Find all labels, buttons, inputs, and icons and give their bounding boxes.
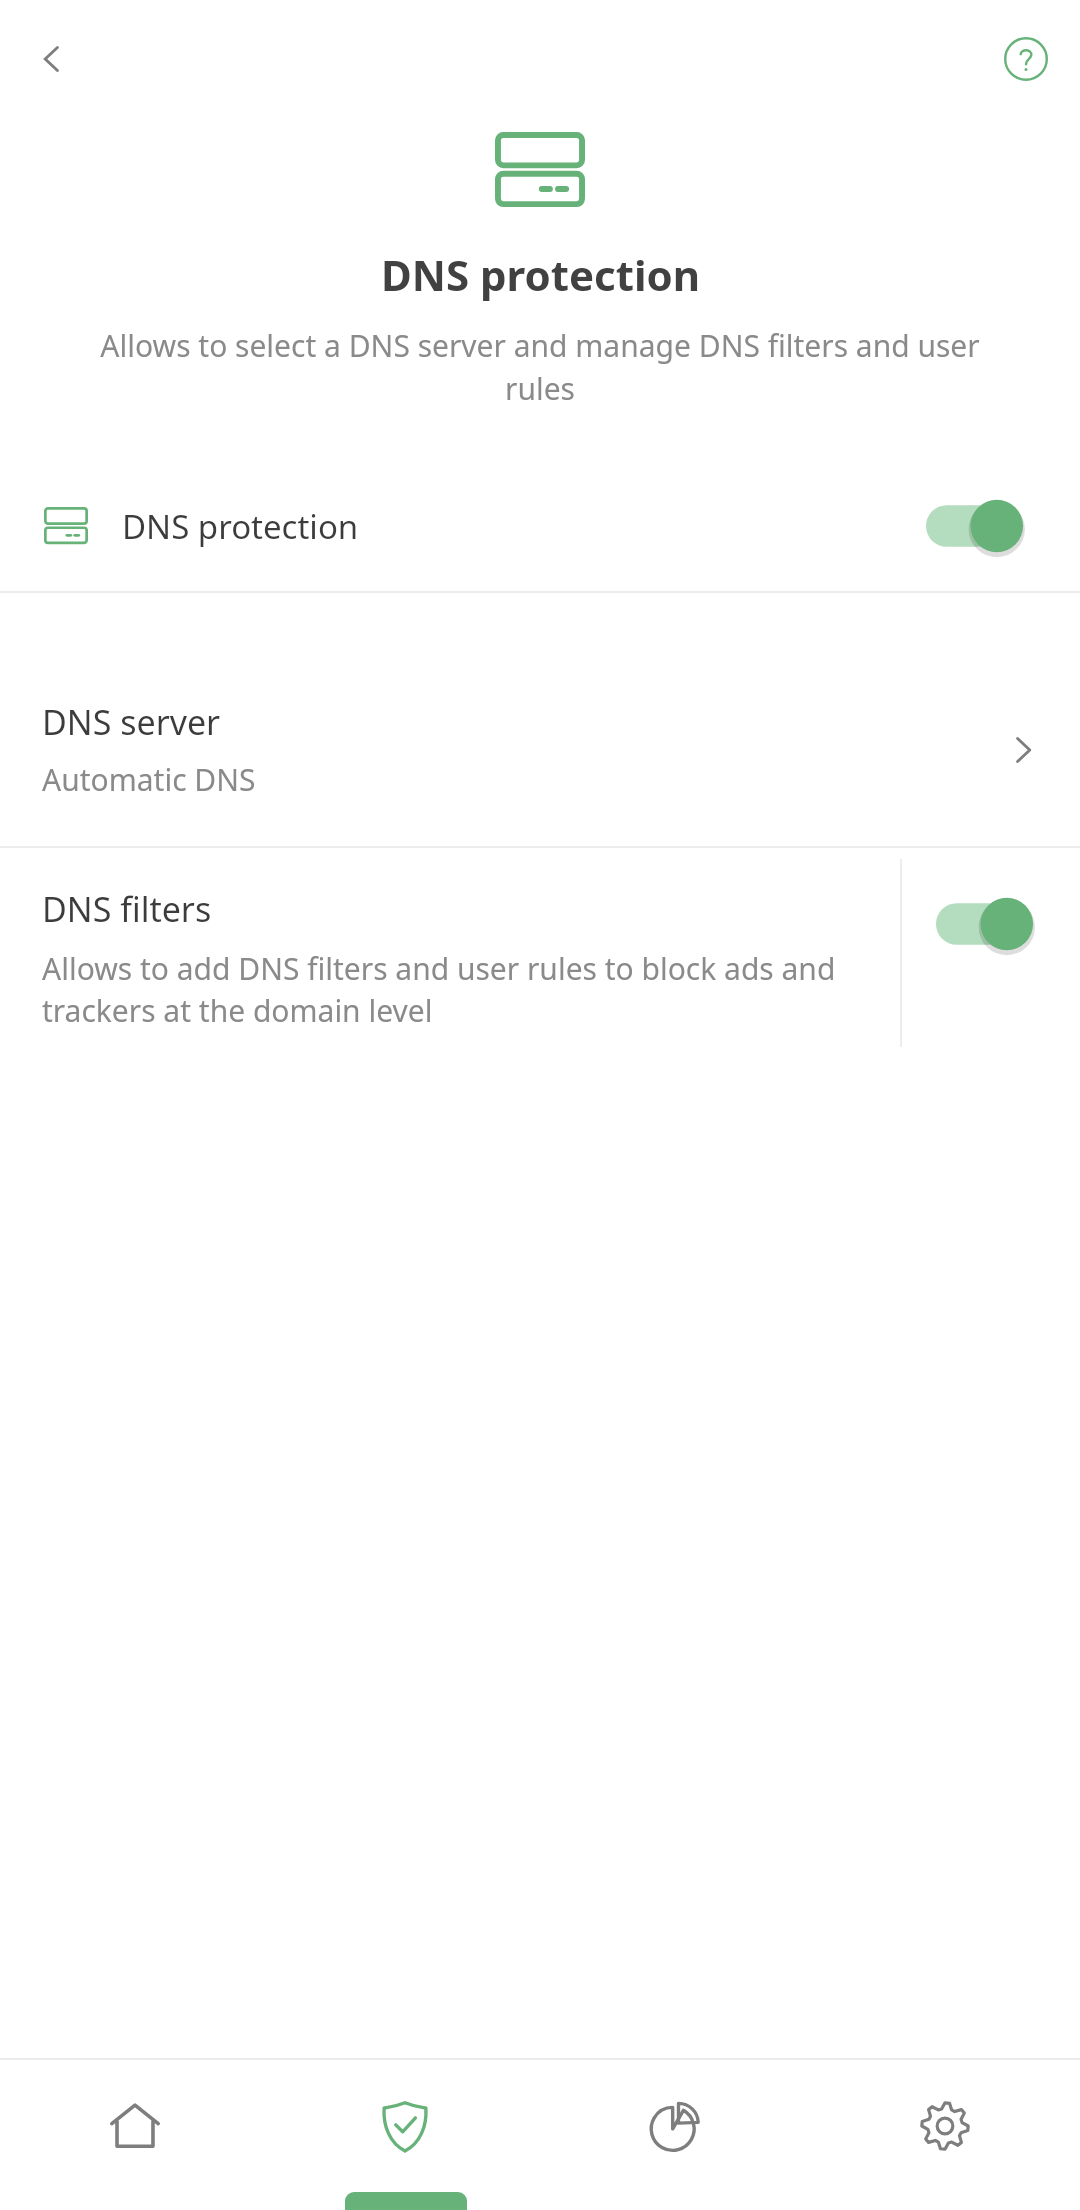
button[interactable]: Protection: [270, 2060, 540, 2192]
staticText: Automatic DNS: [42, 759, 256, 800]
button[interactable]: Help: [992, 25, 1060, 93]
button[interactable]: [926, 489, 1036, 563]
staticText: Allows to select a DNS server and manage…: [72, 325, 1008, 409]
button[interactable]: Back: [18, 25, 86, 93]
staticText: DNS protection: [122, 504, 359, 549]
staticText: Allows to add DNS filters and user rules…: [42, 948, 870, 1031]
button[interactable]: [936, 887, 1046, 961]
staticText: DNS protection: [381, 246, 700, 303]
button[interactable]: DNS server: [0, 693, 1080, 846]
button[interactable]: DNS protection: [0, 461, 1080, 591]
button[interactable]: DNS filters: [0, 848, 900, 1058]
button[interactable]: Statistics: [540, 2060, 810, 2192]
button[interactable]: [902, 848, 1080, 1058]
button[interactable]: Home: [0, 2060, 270, 2192]
staticText: DNS server: [42, 699, 221, 745]
button[interactable]: Settings: [810, 2060, 1080, 2192]
staticText: DNS filters: [42, 886, 212, 932]
